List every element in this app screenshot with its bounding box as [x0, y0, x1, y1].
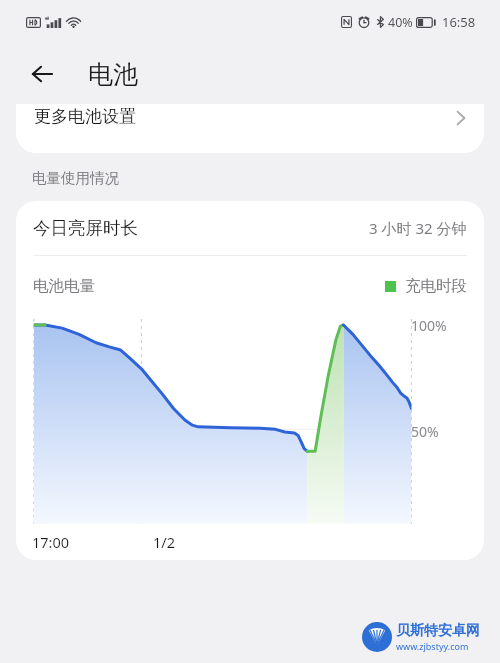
staticText: 电池电量: [33, 276, 95, 296]
staticText: 100%: [411, 316, 447, 335]
staticText: 贝斯特安卓网: [396, 622, 480, 640]
button[interactable]: 返回: [20, 52, 64, 96]
staticText: 电池: [88, 59, 138, 90]
staticText: 充电时段: [405, 276, 467, 296]
staticText: 电量使用情况: [32, 169, 119, 187]
button[interactable]: 更多电池设置: [16, 104, 484, 153]
staticText: 1/2: [153, 532, 175, 552]
staticText: 17:00: [32, 532, 70, 552]
staticText: 更多电池设置: [34, 106, 136, 127]
staticText: 50%: [411, 422, 439, 441]
staticText: 16:58: [442, 13, 476, 31]
staticText: 3 小时 32 分钟: [369, 218, 467, 238]
staticText: 40%: [388, 14, 413, 31]
staticText: 今日亮屏时长: [33, 217, 138, 239]
staticText: www.zjbstyy.com: [396, 640, 469, 652]
